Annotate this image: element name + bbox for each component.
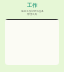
staticText: 每日工作记录与任务 — [21, 10, 44, 13]
staticText: 工作 — [27, 2, 37, 8]
staticText: 管理工具 — [27, 13, 37, 16]
